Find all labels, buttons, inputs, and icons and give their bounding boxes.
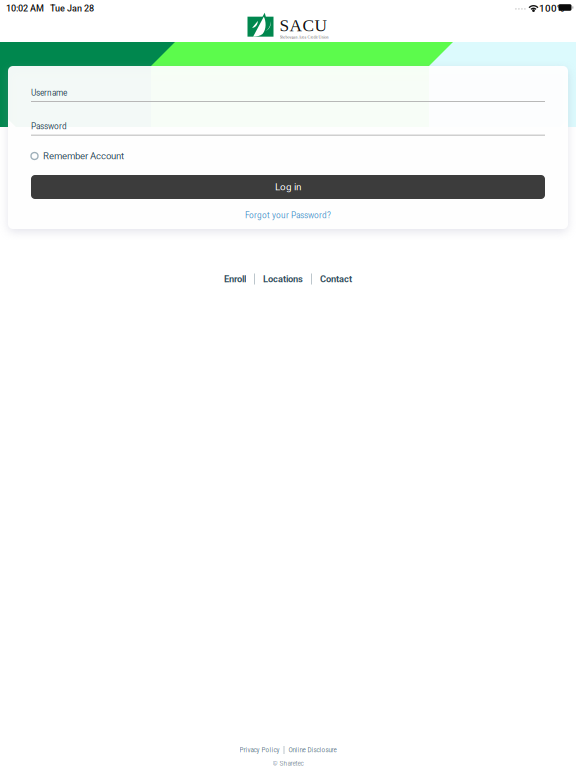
staticText: Privacy Policy bbox=[239, 746, 279, 754]
staticText: Username bbox=[31, 88, 67, 98]
button[interactable]: Enroll bbox=[216, 272, 254, 286]
staticText: Online Disclosure bbox=[288, 746, 336, 754]
staticText: Forgot your Password? bbox=[245, 211, 331, 220]
button[interactable]: Password bbox=[31, 122, 545, 136]
staticText: 10:02 AM Tue Jan 28 bbox=[6, 3, 94, 14]
staticText: © Sharetec bbox=[272, 760, 303, 767]
button[interactable]: Remember Account bbox=[31, 149, 211, 163]
staticText: Password bbox=[31, 122, 67, 131]
staticText: Log in bbox=[275, 181, 301, 193]
staticText: Sheboygan Area Credit Union bbox=[279, 35, 328, 39]
button[interactable]: Online Disclosure bbox=[284, 745, 340, 755]
button[interactable]: Contact bbox=[312, 272, 360, 286]
staticText: SACU bbox=[279, 16, 327, 35]
staticText: Enroll bbox=[224, 273, 246, 284]
button[interactable]: Username bbox=[31, 88, 545, 102]
button[interactable]: Forgot your Password? bbox=[31, 209, 545, 222]
staticText: Remember Account bbox=[43, 150, 124, 162]
staticText: Contact bbox=[320, 273, 352, 284]
button[interactable]: Log in bbox=[31, 175, 545, 199]
staticText: Locations bbox=[263, 273, 303, 284]
button[interactable]: Privacy Policy bbox=[235, 745, 283, 755]
staticText: 100% bbox=[539, 3, 564, 14]
button[interactable]: Locations bbox=[255, 272, 311, 286]
